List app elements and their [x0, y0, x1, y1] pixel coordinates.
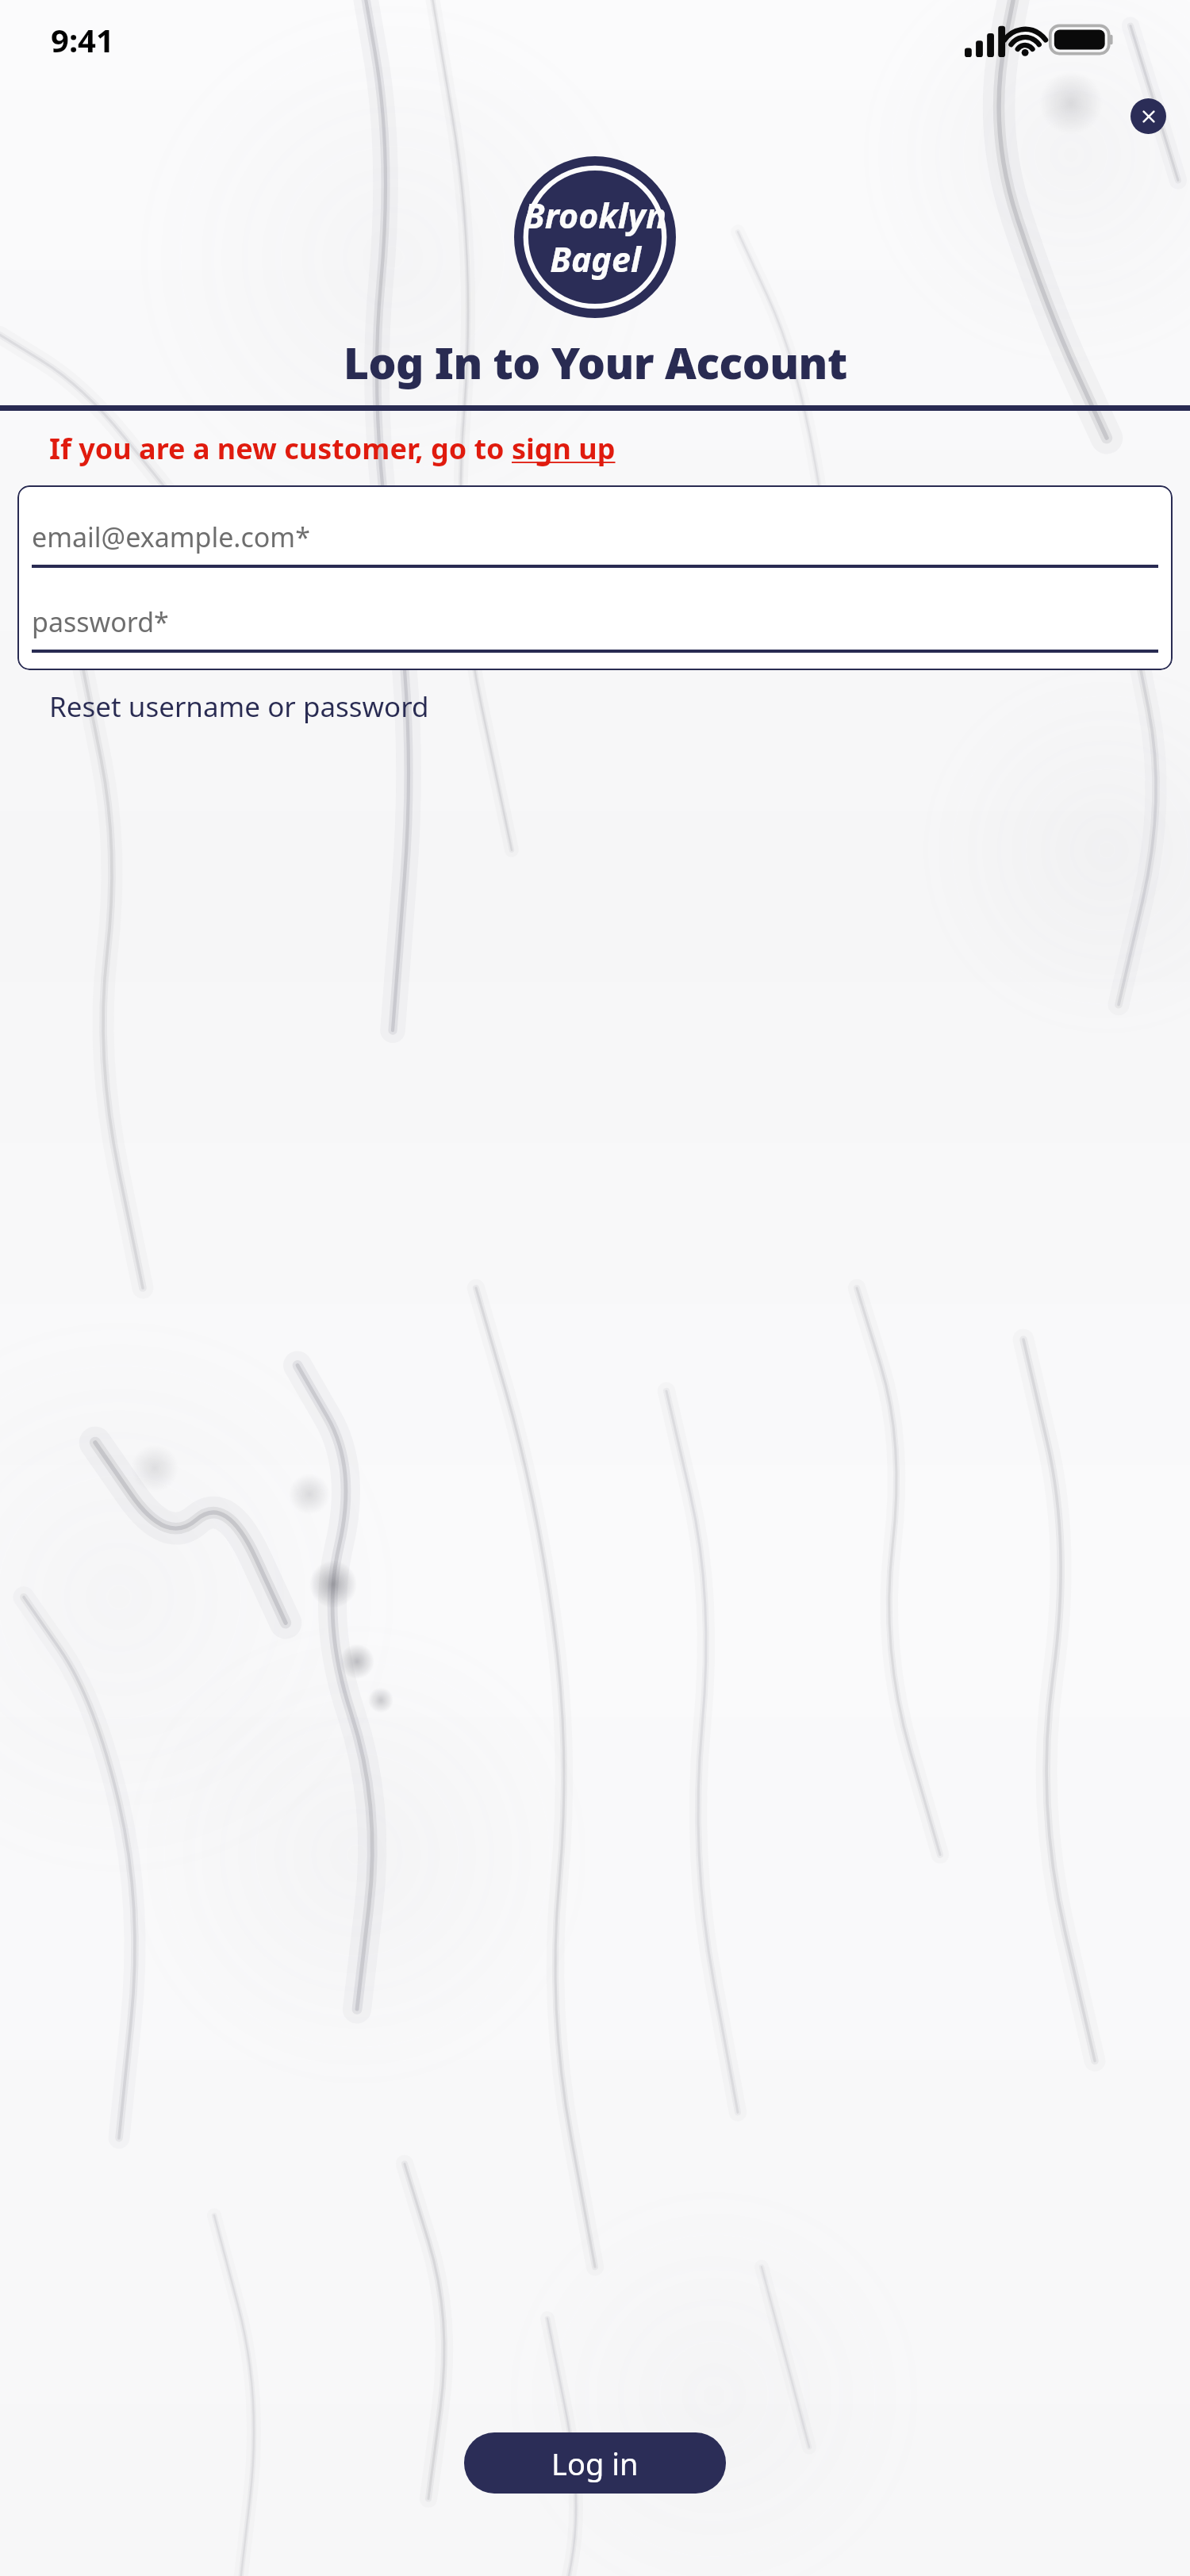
staticText: password* — [32, 604, 169, 640]
button[interactable]: password* — [32, 604, 1158, 653]
staticText: If you are a new customer, go to — [49, 429, 512, 468]
staticText: Bagel — [550, 236, 641, 282]
staticText: email@example.com* — [32, 519, 310, 555]
button[interactable]: Reset username or password — [49, 688, 429, 726]
staticText: Log in — [551, 2443, 639, 2484]
button[interactable]: Log in — [464, 2432, 726, 2494]
staticText: Log In to Your Account — [344, 332, 847, 392]
button[interactable]: email@example.com* — [32, 519, 1158, 568]
staticText: Brooklyn — [524, 192, 666, 239]
staticText: 9:41 — [51, 18, 114, 61]
staticText: sign up — [512, 429, 616, 468]
button[interactable]: If you are a new customer, go to — [49, 429, 616, 468]
button[interactable]: Close — [1130, 98, 1166, 134]
